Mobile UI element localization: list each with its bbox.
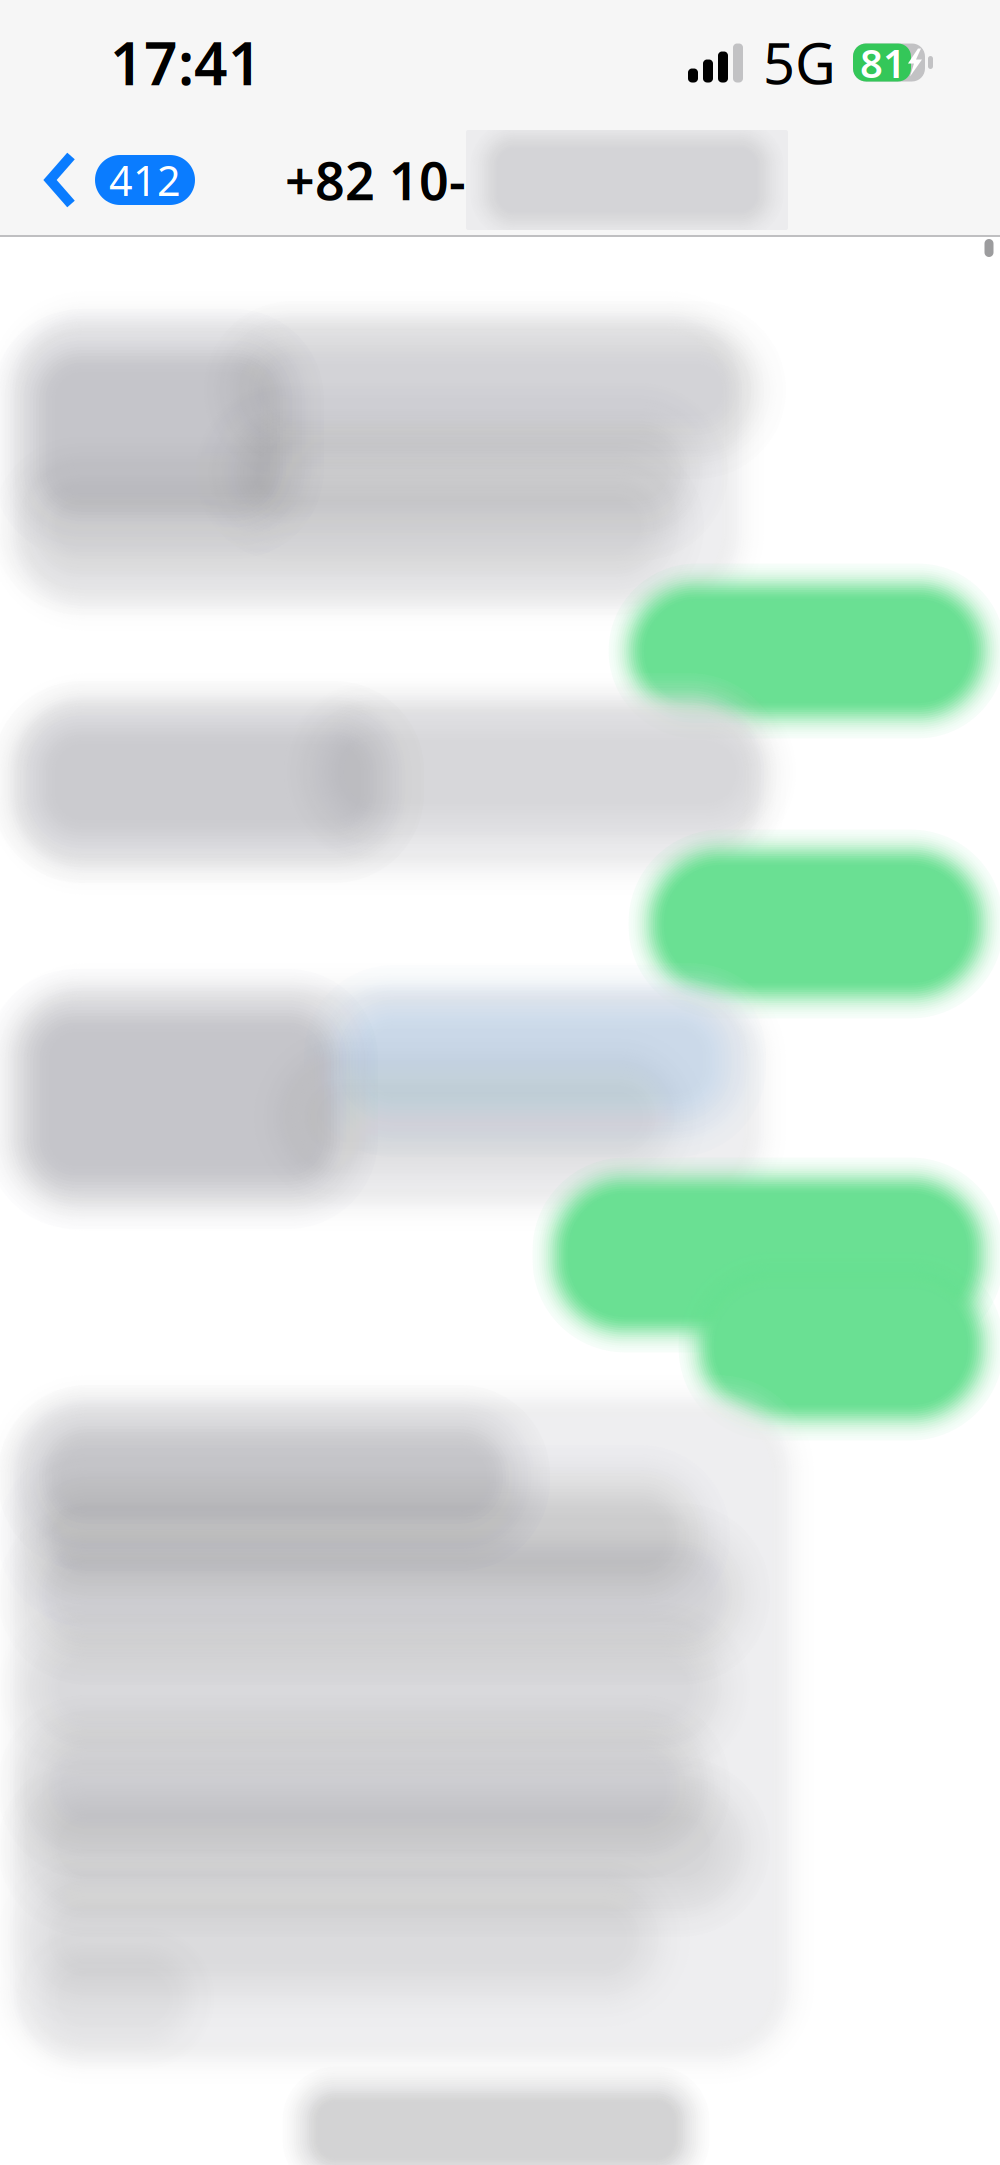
staticText: 81 (860, 36, 906, 89)
button[interactable]: Back (0, 140, 215, 220)
staticText: 17:41 (110, 23, 262, 101)
staticText: +82 10- (285, 145, 466, 215)
staticText: 5G (763, 25, 836, 100)
staticText: 412 (109, 153, 181, 207)
